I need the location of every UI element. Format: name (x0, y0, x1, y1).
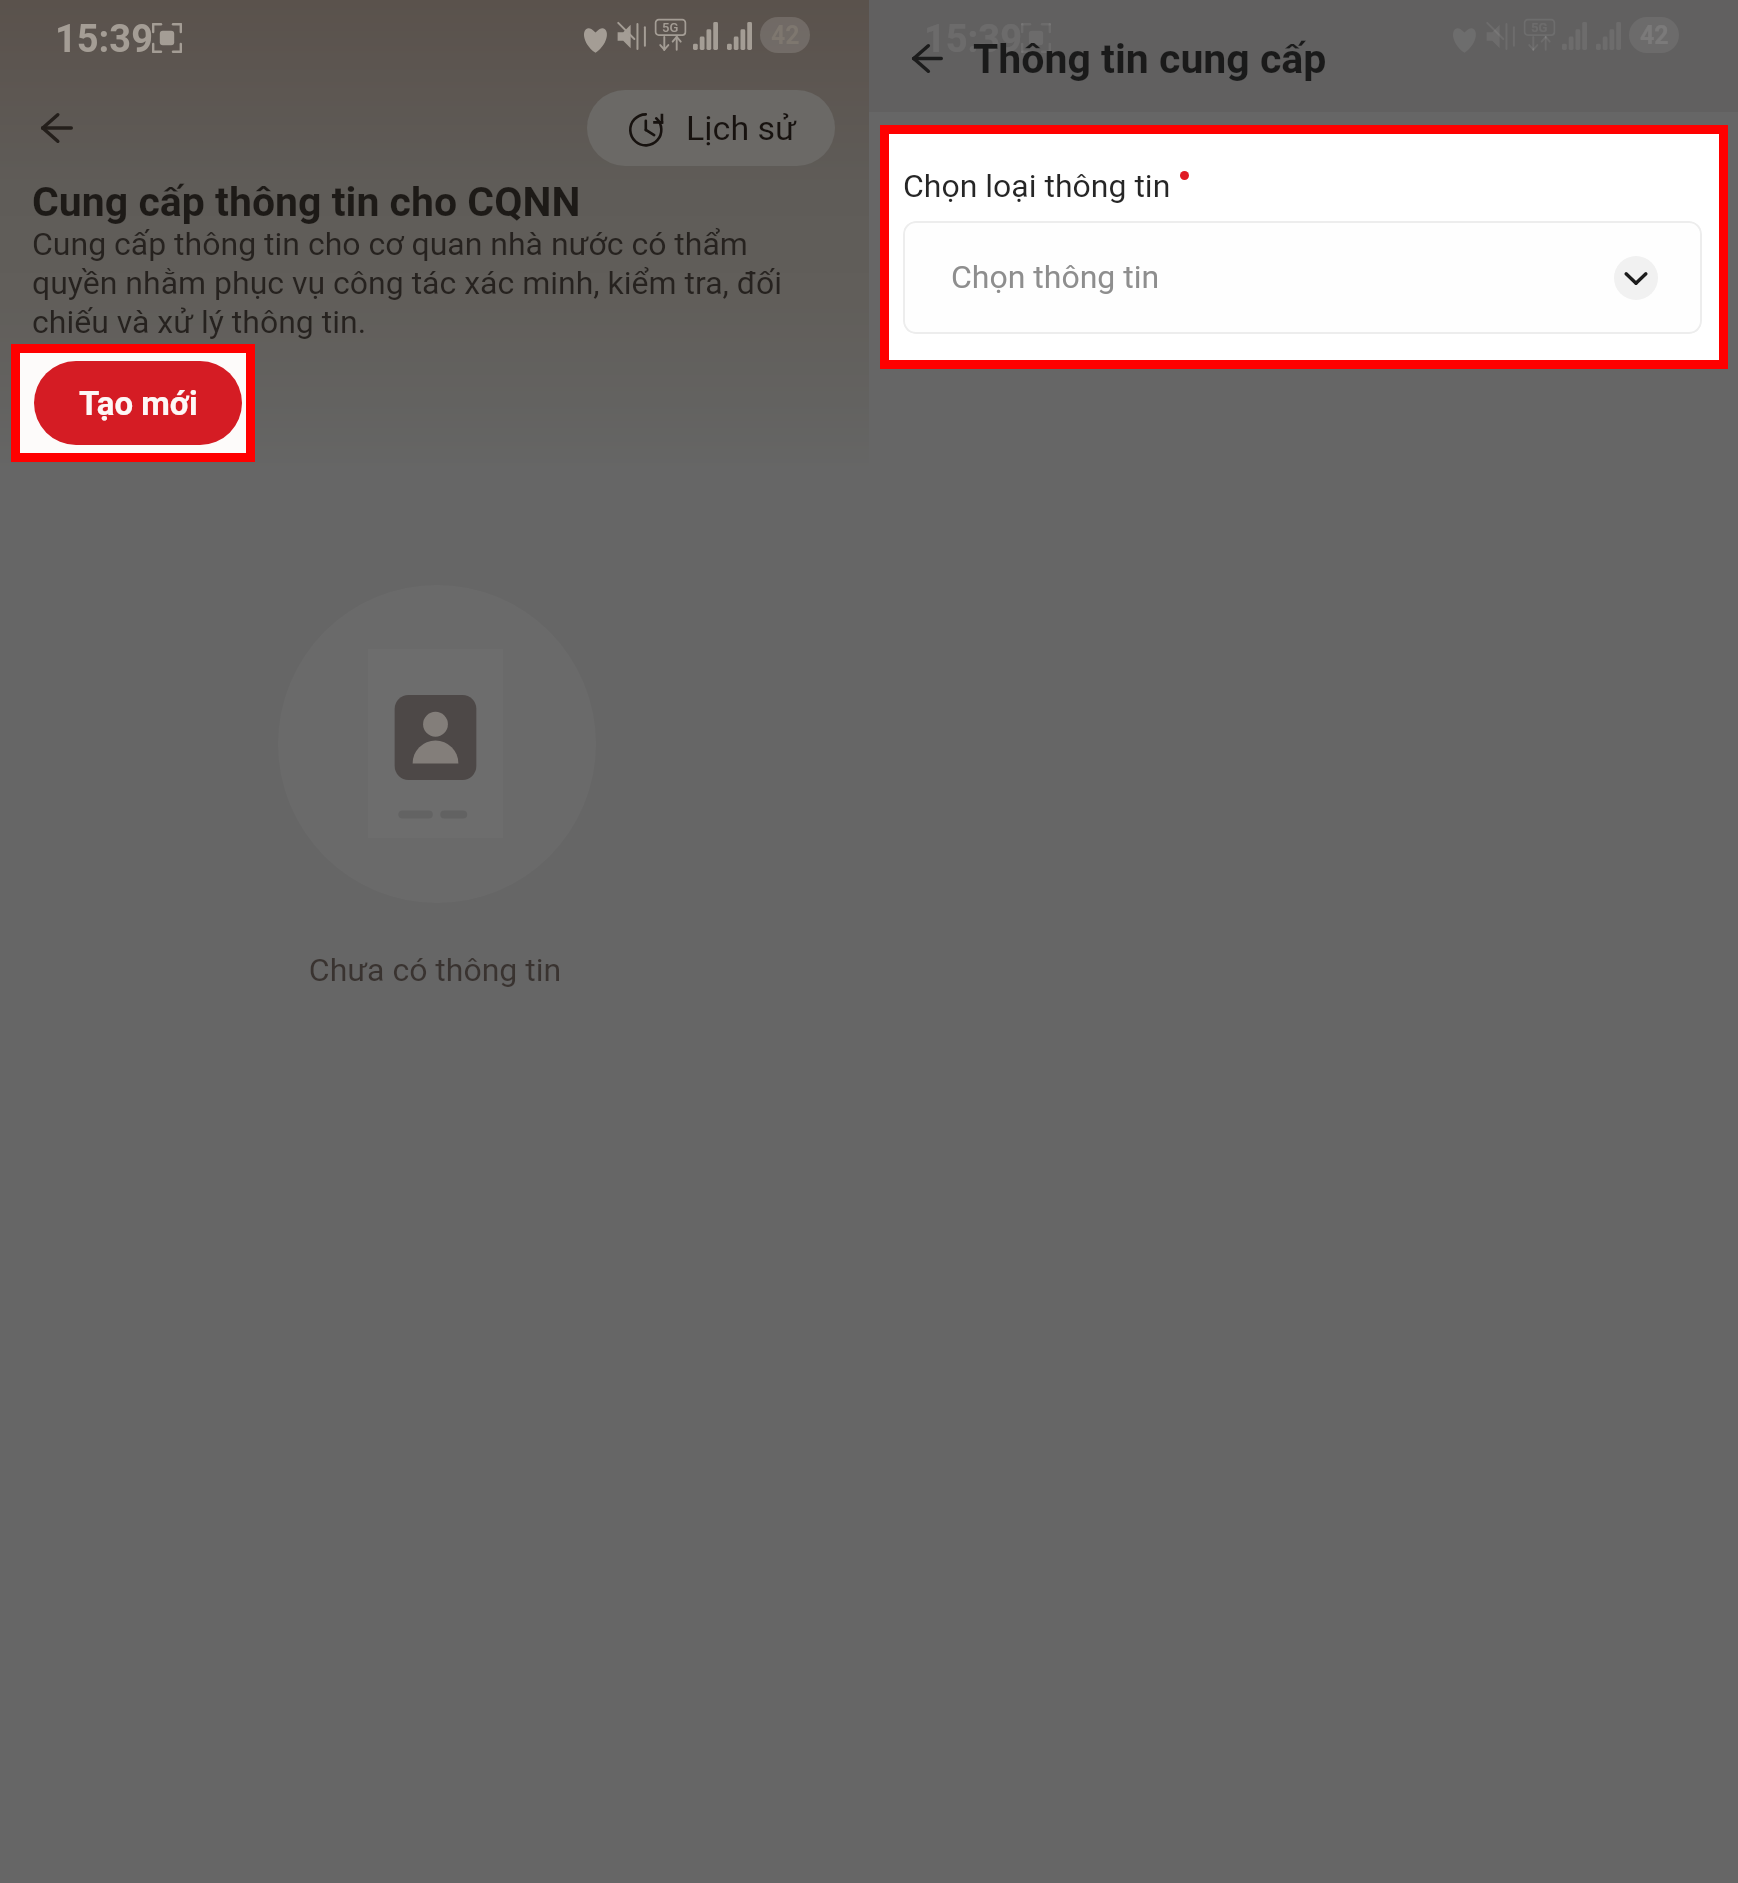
staticText: Cung cấp thông tin cho CQNN (32, 178, 581, 226)
staticText: Tạo mới (79, 384, 198, 423)
staticText: Thông tin cung cấp (973, 35, 1327, 83)
staticText: 5G (1531, 20, 1548, 35)
staticText: 42 (771, 21, 800, 50)
button[interactable]: Tạo mới (34, 361, 242, 445)
button[interactable]: Back (898, 29, 956, 87)
staticText: 15:39 (55, 17, 153, 62)
staticText: 5G (662, 20, 679, 35)
staticText: Chọn thông tin (951, 258, 1160, 296)
staticText: Chưa có thông tin (255, 951, 615, 989)
staticText: 15:39 (924, 17, 1022, 62)
button[interactable]: Back (29, 100, 85, 156)
button[interactable]: Chọn thông tin (903, 221, 1702, 334)
staticText: Cung cấp thông tin cho cơ quan nhà nước … (32, 225, 852, 341)
button[interactable]: Lịch sử (587, 90, 835, 166)
staticText: Chọn loại thông tin (903, 167, 1171, 205)
staticText: 42 (1640, 21, 1669, 50)
staticText: Lịch sử (686, 108, 797, 148)
